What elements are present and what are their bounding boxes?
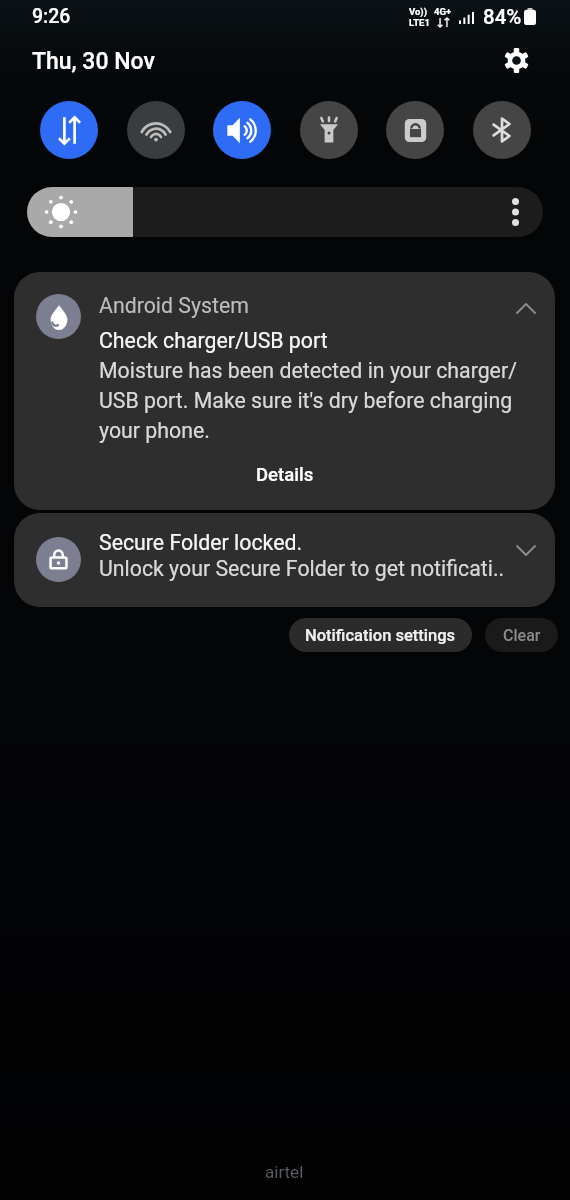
button[interactable]: Bluetooth [473,101,531,159]
staticText: Check charger/USB port [99,328,328,353]
staticText: Unlock your Secure Folder to get notific… [99,556,505,581]
staticText: Android System [99,293,249,318]
button[interactable]: Mobile data [40,101,98,159]
button[interactable]: Sound [213,101,271,159]
button[interactable]: Android System [14,272,555,510]
staticText: airtel [265,1162,304,1182]
button[interactable]: Expand notification [508,532,544,568]
button[interactable]: Secure Folder [386,101,444,159]
staticText: 84% [483,5,522,29]
button[interactable]: Clear [485,618,558,652]
button[interactable]: Collapse notification [508,290,544,326]
button[interactable]: Flashlight [300,101,358,159]
button[interactable]: Settings [498,42,534,78]
staticText: 4G+ [434,6,452,17]
staticText: Secure Folder locked. [99,530,303,555]
staticText: Moisture has been detected in your charg… [99,358,539,443]
staticText: Details [256,464,314,486]
staticText: Thu, 30 Nov [32,48,155,75]
staticText: Vo)) [409,6,428,17]
button[interactable]: Details [14,454,555,496]
staticText: 9:26 [32,5,71,28]
button[interactable] [27,187,543,237]
button[interactable]: Notification settings [289,618,472,652]
button[interactable]: Wi-Fi [127,101,185,159]
staticText: Clear [503,626,541,645]
button[interactable]: Secure Folder locked. [14,513,555,607]
staticText: Notification settings [305,626,456,645]
staticText: LTE1 [409,17,430,28]
